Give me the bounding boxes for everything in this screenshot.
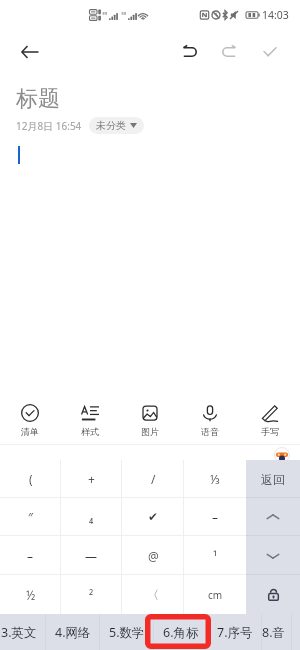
button[interactable]: 〈	[122, 575, 184, 614]
staticText: +	[88, 471, 95, 487]
staticText: 图片	[141, 426, 159, 437]
staticText: 手写	[261, 426, 279, 437]
staticText: /	[151, 471, 156, 487]
staticText: 7.序号	[217, 624, 253, 641]
button[interactable]: cm	[184, 575, 246, 614]
staticText: 返回	[261, 472, 285, 487]
staticText: 未分类	[96, 119, 126, 132]
button[interactable]: Scroll down	[246, 536, 300, 575]
button[interactable]: Lock	[246, 575, 300, 614]
button[interactable]: ⅓	[184, 460, 246, 498]
staticText: ″	[28, 509, 33, 525]
button[interactable]: 手写	[240, 396, 300, 444]
button[interactable]: ✔	[122, 498, 184, 536]
staticText: cm	[208, 588, 223, 602]
button[interactable]: 7.序号	[208, 614, 262, 650]
button[interactable]: ½	[0, 575, 61, 614]
button[interactable]: ²	[61, 575, 122, 614]
button[interactable]: 4.网络	[46, 614, 100, 650]
button[interactable]: 语音	[180, 396, 240, 444]
button[interactable]: Input method	[274, 447, 290, 463]
button[interactable]: Back	[12, 34, 48, 70]
staticText: 4.网络	[55, 624, 91, 641]
staticText: 8.音标	[262, 624, 292, 641]
staticText: @	[148, 548, 159, 564]
button[interactable]: 5.数学	[100, 614, 154, 650]
button[interactable]: –	[0, 536, 61, 575]
staticText: ²	[89, 587, 94, 603]
staticText: ₄	[89, 509, 94, 525]
button[interactable]: Done	[254, 36, 286, 68]
staticText: 〈	[147, 587, 159, 602]
button[interactable]: Redo	[213, 36, 245, 68]
button[interactable]: 6.角标	[154, 614, 208, 650]
button[interactable]: ″	[0, 498, 61, 536]
staticText: —	[85, 548, 98, 564]
staticText: ¹	[213, 548, 218, 564]
button[interactable]: 8.音标	[262, 614, 292, 650]
button[interactable]: (	[0, 460, 61, 498]
staticText: –	[27, 548, 34, 564]
button[interactable]: —	[61, 536, 122, 575]
button[interactable]: –	[184, 498, 246, 536]
button[interactable]: 图片	[120, 396, 180, 444]
button[interactable]: 返回	[246, 460, 300, 498]
button[interactable]: ₄	[61, 498, 122, 536]
staticText: ⅓	[210, 471, 220, 487]
staticText: –	[212, 509, 219, 525]
button[interactable]: Scroll up	[246, 498, 300, 536]
button[interactable]: 样式	[60, 396, 120, 444]
staticText: 6.角标	[163, 624, 199, 641]
button[interactable]: /	[122, 460, 184, 498]
staticText: 12月8日 16:54	[16, 119, 82, 133]
button[interactable]: ¹	[184, 536, 246, 575]
button[interactable]: +	[61, 460, 122, 498]
staticText: 样式	[81, 426, 99, 437]
staticText: 5.数学	[109, 624, 145, 641]
staticText: 语音	[201, 426, 219, 437]
button[interactable]: 3.英文	[0, 614, 46, 650]
button[interactable]: 清单	[0, 396, 60, 444]
staticText: 3.英文	[1, 624, 37, 641]
staticText: ✔	[148, 510, 159, 524]
button[interactable]: @	[122, 536, 184, 575]
staticText: ½	[26, 587, 36, 603]
staticText: (	[29, 471, 33, 487]
staticText: 标题	[16, 85, 60, 113]
button[interactable]: Undo	[174, 36, 206, 68]
button[interactable]: 未分类	[89, 117, 144, 134]
staticText: 清单	[21, 426, 39, 437]
staticText: 14:03	[262, 8, 289, 22]
